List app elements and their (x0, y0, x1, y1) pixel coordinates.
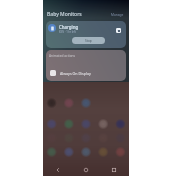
button[interactable]: Home (80, 164, 92, 176)
button[interactable]: Charging (46, 21, 126, 48)
button[interactable]: Stop (72, 37, 105, 44)
staticText: Always On Display (60, 71, 91, 76)
staticText: 83% · 1 hr left (59, 30, 76, 34)
button[interactable]: Always On Display (46, 68, 126, 78)
button[interactable]: Battery details (116, 28, 121, 33)
button[interactable]: Recent apps (108, 164, 120, 176)
button[interactable]: Manage (110, 12, 125, 18)
staticText: Stop (85, 39, 92, 43)
staticText: Animated actions (49, 54, 76, 58)
staticText: Charging (59, 24, 79, 30)
button[interactable]: Back (52, 164, 64, 176)
staticText: Baby Monitors (47, 11, 82, 18)
staticText: Manage (111, 13, 124, 17)
